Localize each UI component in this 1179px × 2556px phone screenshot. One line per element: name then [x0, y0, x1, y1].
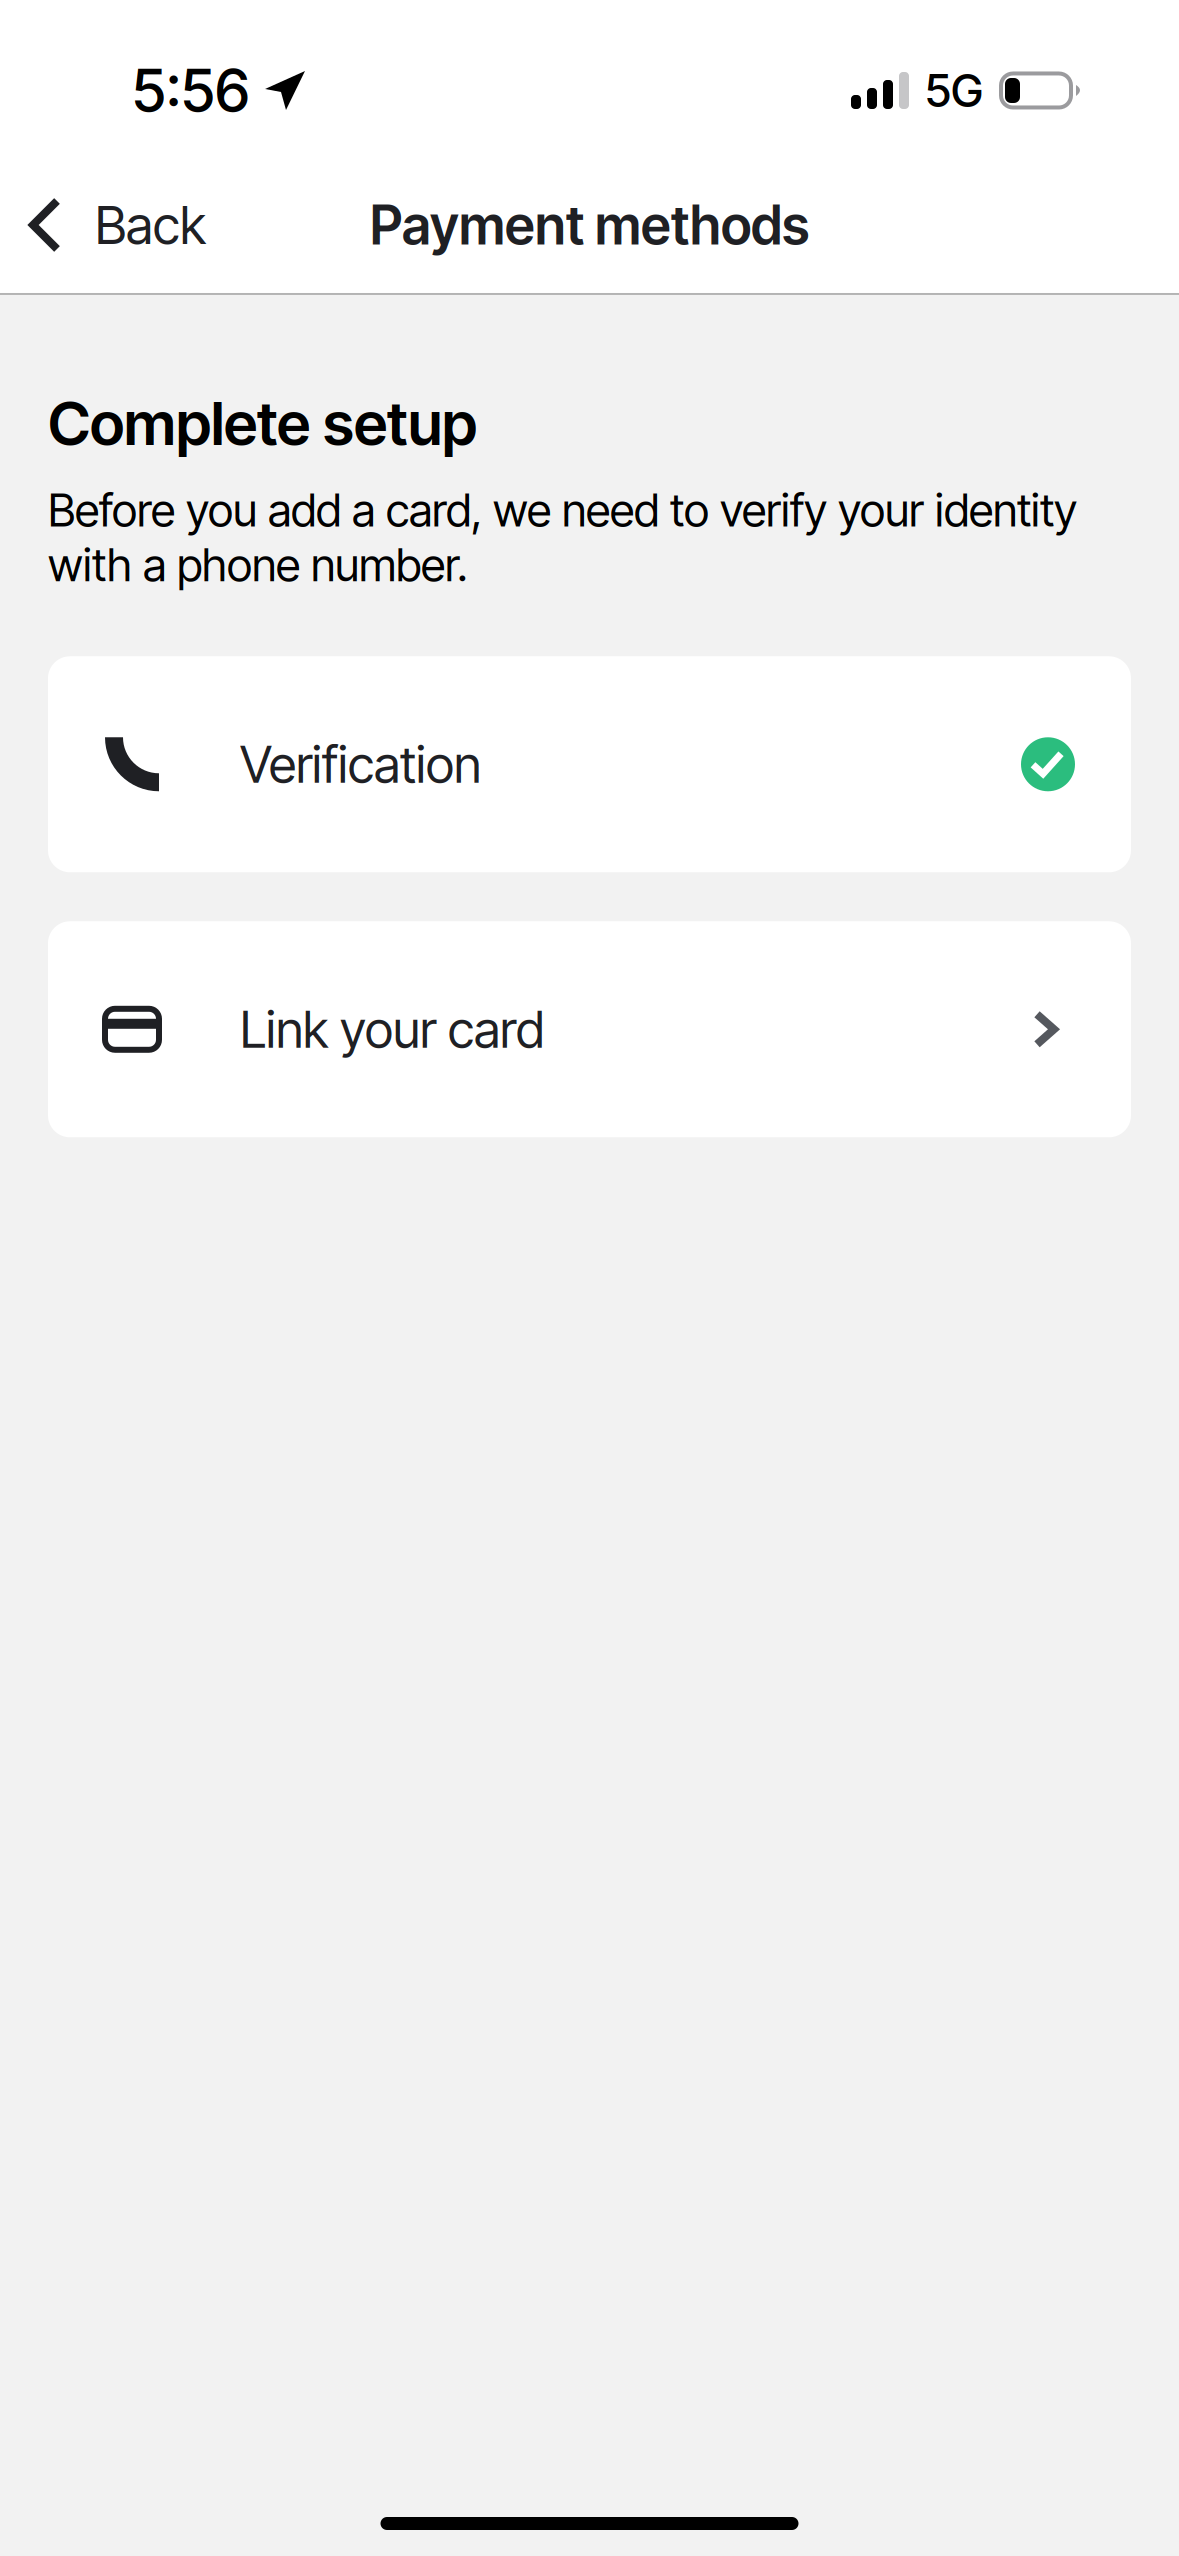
button[interactable]: Verification: [48, 656, 1131, 872]
staticText: Verification: [240, 734, 481, 795]
button[interactable]: Link your card: [48, 921, 1131, 1137]
staticText: Payment methods: [370, 193, 809, 257]
staticText: 5G: [925, 63, 983, 118]
button[interactable]: Back: [0, 171, 236, 278]
staticText: 5:56: [132, 55, 250, 126]
staticText: Link your card: [240, 999, 544, 1060]
staticText: Back: [95, 193, 206, 256]
staticText: Before you add a card, we need to verify…: [48, 483, 1077, 592]
staticText: Complete setup: [48, 387, 477, 460]
